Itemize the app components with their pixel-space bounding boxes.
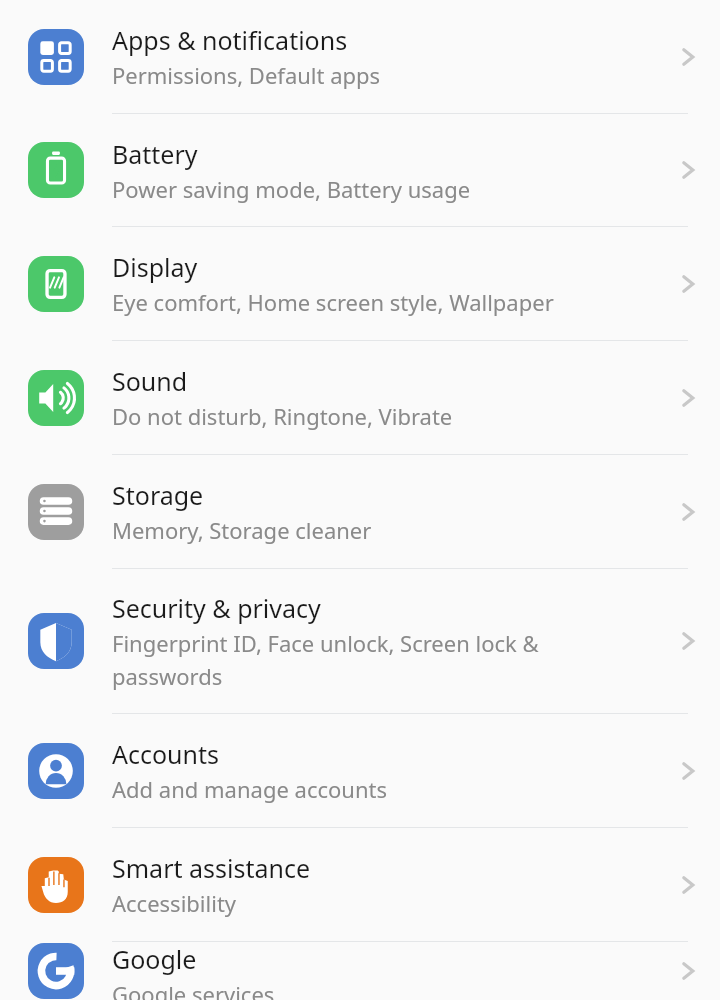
other: Google	[656, 942, 720, 1000]
other: Sound	[656, 341, 720, 454]
button[interactable]: Security & privacy	[0, 569, 720, 713]
staticText: Do not disturb, Ringtone, Vibrate	[112, 401, 453, 431]
staticText: Fingerprint ID, Face unlock, Screen lock…	[112, 628, 648, 691]
staticText: Power saving mode, Battery usage	[112, 174, 471, 204]
other: Security & privacy	[656, 569, 720, 713]
staticText: Google	[112, 942, 197, 976]
button[interactable]: Google	[0, 942, 720, 1000]
staticText: Memory, Storage cleaner	[112, 515, 372, 545]
staticText: Security & privacy	[112, 591, 321, 625]
other: Accounts	[656, 714, 720, 827]
other: Battery	[656, 114, 720, 226]
other: Apps & notifications	[656, 0, 720, 113]
staticText: Smart assistance	[112, 851, 310, 885]
button[interactable]: Battery	[0, 114, 720, 226]
other: Display	[656, 227, 720, 340]
other: Smart assistance	[656, 828, 720, 941]
staticText: Accounts	[112, 737, 220, 771]
staticText: Display	[112, 250, 198, 284]
staticText: Sound	[112, 364, 188, 398]
button[interactable]: Sound	[0, 341, 720, 454]
button[interactable]: Display	[0, 227, 720, 340]
staticText: Eye comfort, Home screen style, Wallpape…	[112, 287, 554, 317]
button[interactable]: Smart assistance	[0, 828, 720, 941]
button[interactable]: Accounts	[0, 714, 720, 827]
staticText: Battery	[112, 137, 198, 171]
other: Storage	[656, 455, 720, 568]
staticText: Permissions, Default apps	[112, 60, 381, 90]
staticText: Google services	[112, 979, 275, 1000]
button[interactable]: Storage	[0, 455, 720, 568]
staticText: Add and manage accounts	[112, 774, 387, 804]
staticText: Accessibility	[112, 888, 237, 918]
button[interactable]: Apps & notifications	[0, 0, 720, 113]
staticText: Apps & notifications	[112, 23, 348, 57]
staticText: Storage	[112, 478, 204, 512]
